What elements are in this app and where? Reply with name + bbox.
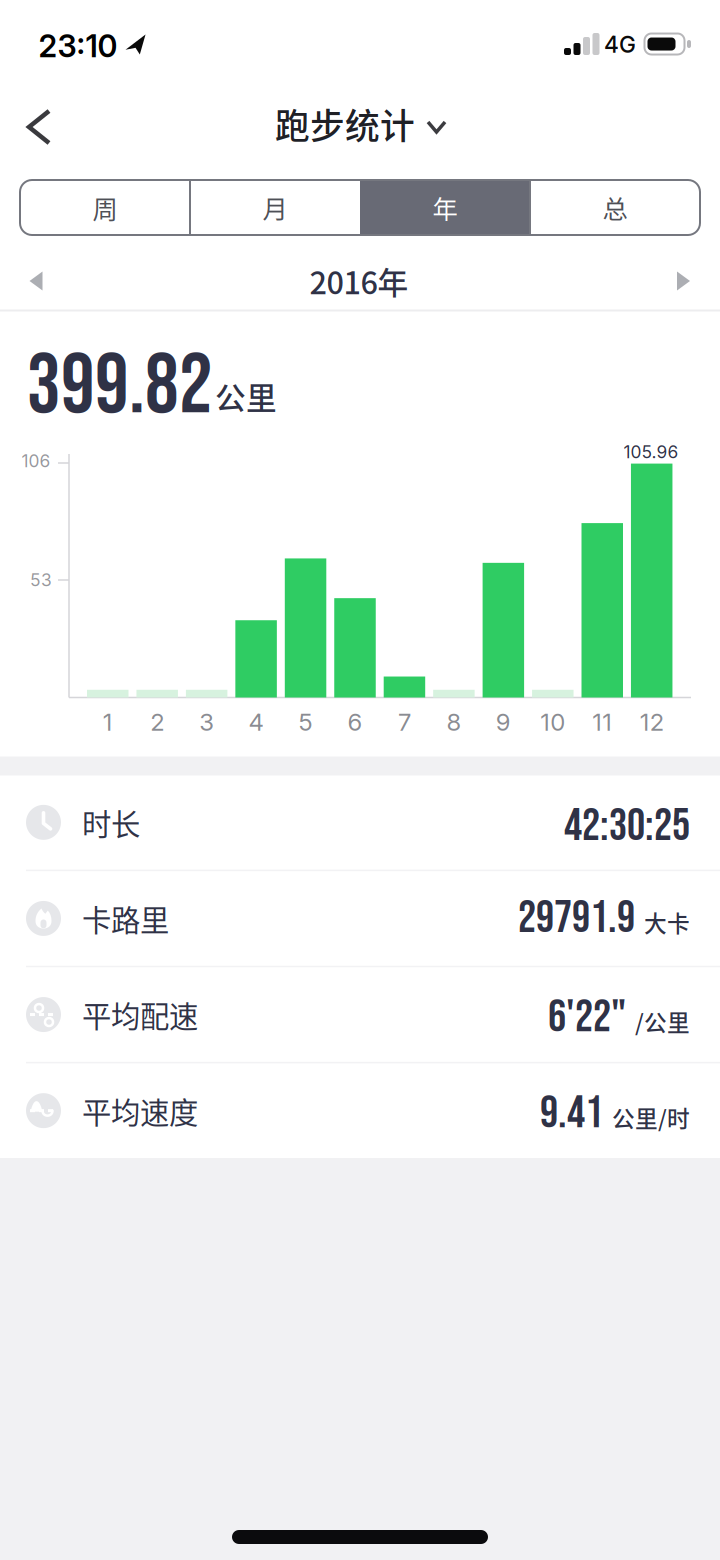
staticText: 9.41 [540,1086,603,1141]
button[interactable]: 周 [20,180,190,235]
button[interactable]: Back [29,111,49,143]
staticText: 9 [496,707,511,736]
staticText: 年 [432,189,457,226]
staticText: 105.96 [623,441,678,462]
staticText: 平均速度 [82,1089,198,1132]
button[interactable]: 月 [190,180,360,235]
button[interactable]: 跑步统计 [275,99,445,149]
staticText: 7 [398,707,411,736]
staticText: 公里 [215,374,277,418]
staticText: 5 [299,707,313,736]
button[interactable]: 总 [530,180,700,235]
staticText: 卡路里 [82,897,169,940]
staticText: 106 [21,450,50,471]
staticText: 大卡 [644,906,690,939]
staticText: 53 [30,569,52,590]
staticText: 4 [249,707,264,736]
staticText: 月 [262,189,287,226]
staticText: 跑步统计 [275,99,415,149]
staticText: 8 [446,707,461,736]
staticText: 公里/时 [612,1101,690,1134]
staticText: /公里 [635,1005,690,1038]
button[interactable]: Next year [677,271,690,290]
staticText: 12 [640,707,664,736]
staticText: 总 [602,189,627,226]
staticText: 4G [604,31,636,58]
staticText: 平均配速 [82,993,198,1036]
staticText: 23:10 [38,27,117,64]
staticText: 11 [592,707,612,736]
staticText: 时长 [82,801,140,844]
staticText: 6'22" [548,990,626,1045]
button[interactable]: Previous year [29,271,42,290]
staticText: 1 [103,707,113,736]
staticText: 29791.9 [518,891,635,946]
button[interactable]: 年 [360,180,530,235]
staticText: 3 [199,707,214,736]
staticText: 10 [540,707,565,736]
staticText: 2016年 [309,259,408,303]
staticText: 周 [92,189,117,226]
staticText: 6 [347,707,362,736]
staticText: 2 [150,707,164,736]
staticText: 399.82 [27,337,213,437]
staticText: 42:30:25 [564,799,690,854]
